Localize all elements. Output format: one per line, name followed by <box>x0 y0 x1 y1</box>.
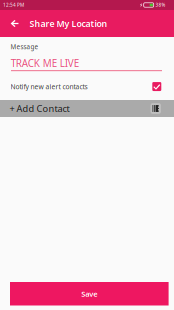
staticText: Notify new alert contacts <box>11 82 88 91</box>
button[interactable]: Save <box>10 282 169 305</box>
staticText: Message <box>10 42 38 51</box>
button[interactable]: + Add Contact <box>0 100 174 117</box>
staticText: Save <box>81 289 97 299</box>
staticText: Share My Location <box>29 17 107 29</box>
button[interactable]: Back <box>5 10 24 37</box>
staticText: 38% <box>155 2 165 8</box>
button[interactable]: Notify new alert contacts <box>0 71 174 100</box>
staticText: 12:54 PM <box>3 2 24 8</box>
staticText: + Add Contact <box>9 102 69 115</box>
staticText: TRACK ME LIVE <box>11 57 79 70</box>
